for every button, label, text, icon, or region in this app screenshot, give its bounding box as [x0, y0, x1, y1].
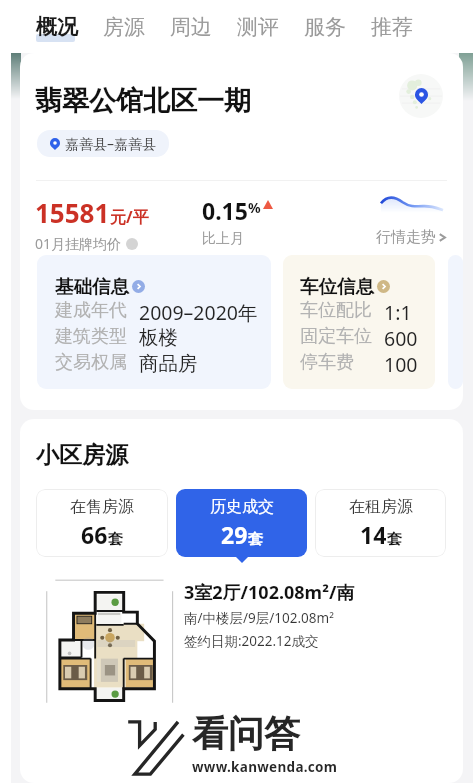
staticText: 停车费 [300, 351, 354, 374]
staticText: 100 [384, 351, 418, 377]
staticText: % [248, 198, 261, 217]
staticText: 66 [81, 519, 108, 550]
staticText: www.kanwenda.com [192, 758, 338, 776]
button[interactable]: 嘉善县–嘉善县 [37, 130, 169, 157]
staticText: 在租房源 [349, 497, 413, 517]
staticText: 0.15 [202, 195, 248, 226]
staticText: 南/中楼层/9层/102.08m² [184, 609, 334, 627]
staticText: 嘉善县–嘉善县 [65, 134, 156, 153]
button[interactable]: 地图 [399, 74, 443, 118]
button[interactable]: 在租房源 [315, 489, 446, 557]
staticText: 车位信息 [300, 275, 374, 298]
staticText: 建筑类型 [55, 325, 127, 348]
staticText: 行情走势 [376, 228, 436, 247]
staticText: 3室2厅/102.08m²/南 [184, 580, 355, 605]
staticText: 历史成交 [210, 497, 274, 517]
staticText: 14 [360, 519, 387, 550]
button[interactable]: 车位信息 [283, 255, 435, 389]
staticText: 比上月 [202, 230, 244, 248]
staticText: 套 [387, 530, 402, 549]
staticText: 套 [248, 530, 263, 549]
staticText: 建成年代 [55, 299, 127, 322]
button[interactable]: 周边 [170, 0, 212, 53]
staticText: 车位配比 [300, 299, 372, 322]
staticText: 推荐 [371, 14, 413, 40]
button[interactable]: 测评 [237, 0, 279, 53]
staticText: 签约日期:2022.12成交 [184, 632, 319, 650]
staticText: 固定车位 [300, 325, 372, 348]
button[interactable]: 服务 [304, 0, 346, 53]
staticText: 板楼 [139, 325, 178, 350]
button[interactable]: 概况 [36, 0, 78, 53]
staticText: 01月挂牌均价 [35, 234, 122, 253]
button[interactable]: 基础信息 [37, 255, 271, 389]
staticText: 1:1 [384, 299, 412, 325]
staticText: 交易权属 [55, 351, 127, 374]
staticText: 元/平 [110, 206, 149, 228]
staticText: 测评 [237, 14, 279, 40]
button[interactable]: 房源 [103, 0, 145, 53]
button[interactable]: 3室2厅/102.08m²/南 [20, 571, 463, 711]
staticText: 29 [221, 519, 248, 550]
staticText: 2009–2020年 [139, 299, 258, 325]
staticText: 看问答 [192, 711, 300, 756]
staticText: 房源 [103, 14, 145, 40]
staticText: 在售房源 [70, 497, 134, 517]
staticText: 商品房 [139, 351, 198, 376]
button[interactable]: 推荐 [371, 0, 413, 53]
staticText: 服务 [304, 14, 346, 40]
staticText: 小区房源 [36, 441, 128, 470]
staticText: 周边 [170, 14, 212, 40]
button[interactable]: 历史成交 [176, 489, 307, 557]
staticText: 套 [108, 530, 123, 549]
button[interactable]: 行情走势 [376, 228, 448, 247]
staticText: 概况 [36, 14, 78, 40]
staticText: 基础信息 [55, 275, 129, 298]
staticText: 600 [384, 325, 418, 351]
button[interactable]: 在售房源 [36, 489, 168, 557]
staticText: 翡翠公馆北区一期 [35, 84, 251, 118]
staticText: 15581 [35, 195, 110, 230]
